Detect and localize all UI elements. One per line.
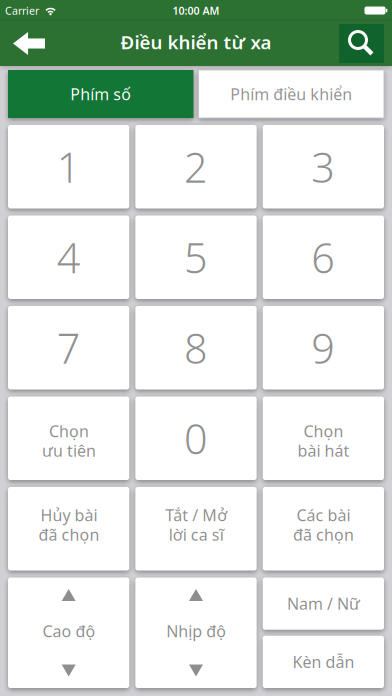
staticText: Carrier xyxy=(5,3,39,18)
button[interactable]: 9 xyxy=(263,306,384,389)
button[interactable]: 6 xyxy=(263,215,384,299)
button[interactable]: 4 xyxy=(8,215,129,299)
button[interactable]: Chọn ưu tiên xyxy=(8,396,129,480)
button[interactable]: Cao độ xyxy=(8,577,129,688)
button[interactable]: Back xyxy=(0,21,45,66)
staticText: Chọn ưu tiên xyxy=(42,420,96,461)
staticText: Kèn dẫn xyxy=(292,651,354,672)
button[interactable]: Nhịp độ xyxy=(135,577,257,688)
button[interactable]: Hủy bài đã chọn xyxy=(8,487,129,570)
button[interactable]: Tắt / Mở lời ca sĩ xyxy=(135,487,257,570)
button[interactable]: Search xyxy=(339,24,384,63)
staticText: Nhịp độ xyxy=(166,620,226,641)
staticText: Chọn bài hát xyxy=(297,420,349,461)
button[interactable]: 2 xyxy=(135,125,257,208)
button[interactable]: 7 xyxy=(8,306,129,389)
staticText: 1 xyxy=(57,139,81,194)
button[interactable]: 8 xyxy=(135,306,257,389)
button[interactable]: Phím điều khiển xyxy=(198,70,384,118)
button[interactable]: 1 xyxy=(8,125,129,208)
staticText: 5 xyxy=(184,230,208,285)
staticText: 10:00 AM xyxy=(172,3,219,18)
staticText: Điều khiển từ xa xyxy=(120,30,271,54)
staticText: 2 xyxy=(184,139,208,194)
staticText: Nam / Nữ xyxy=(287,593,360,614)
staticText: Các bài đã chọn xyxy=(293,504,354,545)
staticText: 8 xyxy=(184,320,208,375)
staticText: 0 xyxy=(184,411,208,466)
button[interactable]: Phím số xyxy=(8,70,193,118)
button[interactable]: 0 xyxy=(135,396,257,480)
staticText: 6 xyxy=(311,230,335,285)
staticText: Tắt / Mở lời ca sĩ xyxy=(165,504,227,545)
staticText: Phím số xyxy=(70,83,131,105)
staticText: Cao độ xyxy=(42,620,95,641)
staticText: Hủy bài đã chọn xyxy=(38,504,99,545)
staticText: 9 xyxy=(311,320,335,375)
staticText: 4 xyxy=(57,230,81,285)
button[interactable]: Các bài đã chọn xyxy=(263,487,384,570)
button[interactable]: Kèn dẫn xyxy=(263,636,384,688)
staticText: Phím điều khiển xyxy=(230,83,352,105)
button[interactable]: Chọn bài hát xyxy=(263,396,384,480)
button[interactable]: Nam / Nữ xyxy=(263,577,384,630)
button[interactable]: 3 xyxy=(263,125,384,208)
staticText: 7 xyxy=(57,320,81,375)
button[interactable]: 5 xyxy=(135,215,257,299)
staticText: 3 xyxy=(311,139,335,194)
